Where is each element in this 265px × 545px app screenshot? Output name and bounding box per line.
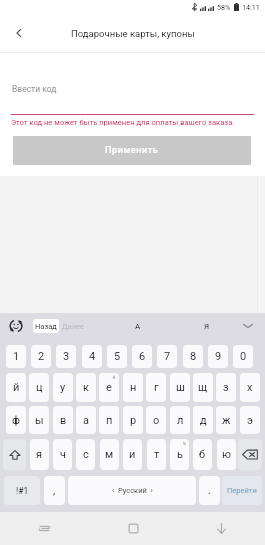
button[interactable]: е xyxy=(99,373,119,402)
button[interactable]: й xyxy=(6,373,26,402)
staticText: ‹ Русский › xyxy=(112,486,153,495)
button[interactable]: э xyxy=(240,406,260,434)
staticText: ы xyxy=(35,414,44,427)
button[interactable]: м xyxy=(100,439,119,470)
button[interactable]: щ xyxy=(193,373,213,402)
staticText: Подарочные карты, купоны xyxy=(71,28,195,39)
staticText: Этот код не может быть применен для опла… xyxy=(11,118,235,127)
staticText: х xyxy=(247,381,253,394)
button[interactable]: 8 xyxy=(183,345,203,368)
button[interactable]: к xyxy=(76,373,96,402)
staticText: в xyxy=(60,414,67,427)
button[interactable]: Shift xyxy=(3,439,26,470)
button[interactable]: Я xyxy=(197,319,217,333)
button[interactable]: х xyxy=(240,373,260,402)
button[interactable]: 6 xyxy=(132,345,152,368)
staticText: д xyxy=(200,414,207,427)
staticText: Назад xyxy=(35,322,57,331)
button[interactable]: ю xyxy=(217,439,236,470)
staticText: А xyxy=(135,322,141,331)
button[interactable]: Недавние xyxy=(0,512,89,545)
staticText: Применить xyxy=(105,145,159,156)
staticText: б xyxy=(199,448,206,461)
button[interactable]: о xyxy=(146,406,166,434)
staticText: э xyxy=(247,414,253,427)
button[interactable]: в xyxy=(53,406,73,434)
button[interactable]: . xyxy=(199,476,220,505)
staticText: п xyxy=(106,414,113,427)
button[interactable]: Стереть xyxy=(238,439,262,470)
staticText: о xyxy=(153,414,160,427)
button[interactable]: Далее xyxy=(61,319,85,333)
button[interactable]: п xyxy=(99,406,119,434)
button[interactable]: 3 xyxy=(56,345,76,368)
button[interactable]: 4 xyxy=(82,345,102,368)
button[interactable]: ы xyxy=(29,406,49,434)
button[interactable]: Скрыть клавиатуру xyxy=(240,319,256,333)
staticText: Перейти xyxy=(227,486,257,495)
button[interactable]: л xyxy=(170,406,190,434)
staticText: 3 xyxy=(63,350,70,363)
staticText: !#1 xyxy=(16,486,29,496)
button[interactable]: ц xyxy=(29,373,49,402)
button[interactable]: у xyxy=(53,373,73,402)
button[interactable]: 0 xyxy=(233,345,253,368)
staticText: ш xyxy=(176,381,185,394)
staticText: н xyxy=(130,381,137,394)
button[interactable]: с xyxy=(76,439,95,470)
button[interactable]: т xyxy=(147,439,166,470)
button[interactable]: б xyxy=(193,439,212,470)
staticText: ъ xyxy=(183,441,186,446)
button[interactable]: н xyxy=(123,373,143,402)
button[interactable]: я xyxy=(30,439,49,470)
button[interactable]: Перейти xyxy=(222,476,262,505)
staticText: 7 xyxy=(164,350,171,363)
button[interactable]: ‹ Русский › xyxy=(68,476,196,505)
staticText: ф xyxy=(12,414,20,427)
button[interactable]: з xyxy=(216,373,236,402)
staticText: 4 xyxy=(89,350,96,363)
button[interactable]: 9 xyxy=(208,345,228,368)
staticText: и xyxy=(129,448,136,461)
button[interactable]: 2 xyxy=(31,345,51,368)
button[interactable]: Назад xyxy=(33,319,59,333)
button[interactable]: ч xyxy=(53,439,72,470)
staticText: ё xyxy=(113,375,116,380)
staticText: , xyxy=(53,484,56,497)
button[interactable]: Назад xyxy=(177,512,265,545)
button[interactable]: ь xyxy=(170,439,189,470)
staticText: ю xyxy=(222,448,231,461)
staticText: ц xyxy=(36,381,43,394)
button[interactable]: , xyxy=(44,476,65,505)
button[interactable]: А xyxy=(128,319,148,333)
button[interactable]: р xyxy=(123,406,143,434)
button[interactable]: 7 xyxy=(157,345,177,368)
staticText: я xyxy=(36,448,43,461)
staticText: . xyxy=(208,484,211,497)
staticText: ч xyxy=(60,448,66,461)
button[interactable]: а xyxy=(76,406,96,434)
button[interactable]: г xyxy=(146,373,166,402)
staticText: е xyxy=(106,381,112,394)
staticText: к xyxy=(83,381,89,394)
button[interactable]: и xyxy=(123,439,142,470)
staticText: 0 xyxy=(240,350,247,363)
button[interactable]: Применить xyxy=(13,136,251,165)
staticText: а xyxy=(83,414,89,427)
button[interactable]: 1 xyxy=(6,345,26,368)
staticText: с xyxy=(83,448,89,461)
staticText: з xyxy=(223,381,229,394)
staticText: й xyxy=(13,381,20,394)
button[interactable]: 5 xyxy=(107,345,127,368)
button[interactable]: Домой xyxy=(89,512,177,545)
staticText: 8 xyxy=(190,350,197,363)
button[interactable]: ф xyxy=(6,406,26,434)
staticText: Ввести код xyxy=(12,84,57,94)
button[interactable]: д xyxy=(193,406,213,434)
button[interactable]: Назад xyxy=(0,14,38,52)
staticText: 5 xyxy=(114,350,121,363)
button[interactable]: Эмодзи xyxy=(8,318,24,334)
button[interactable]: ж xyxy=(216,406,236,434)
button[interactable]: !#1 xyxy=(4,476,40,505)
button[interactable]: ш xyxy=(170,373,190,402)
